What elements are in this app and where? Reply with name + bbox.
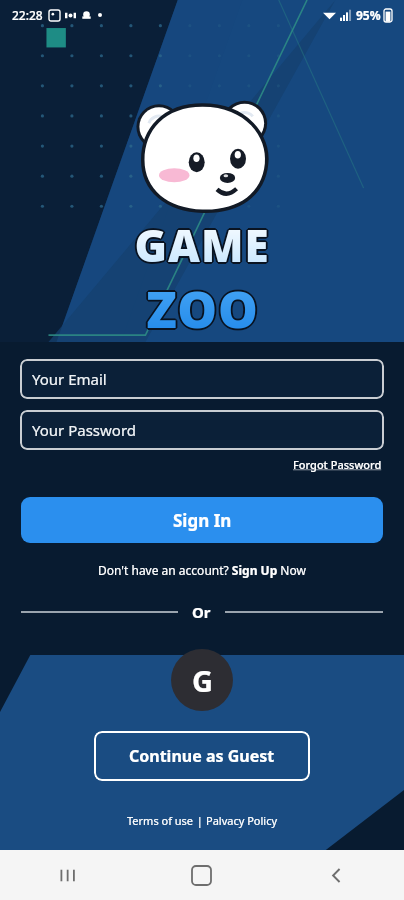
staticText: GAME: [133, 214, 269, 274]
staticText: ZOO: [147, 274, 260, 342]
staticText: GAME: [134, 213, 270, 273]
staticText: ZOO: [148, 275, 261, 343]
staticText: GAME: [135, 214, 271, 274]
staticText: ZOO: [147, 274, 260, 342]
staticText: GAME: [135, 216, 271, 276]
staticText: GAME: [133, 216, 269, 276]
staticText: ZOO: [145, 276, 258, 344]
staticText: Continue as Guest: [129, 745, 275, 767]
staticText: 22:28: [12, 7, 43, 23]
staticText: ZOO: [147, 276, 260, 344]
staticText: GAME: [135, 214, 271, 274]
staticText: ZOO: [145, 274, 258, 342]
staticText: GAME: [133, 214, 269, 274]
staticText: GAME: [134, 217, 270, 277]
staticText: ZOO: [146, 275, 259, 343]
button[interactable]: Sign In: [21, 497, 383, 543]
staticText: GAME: [134, 215, 270, 275]
staticText: ZOO: [147, 276, 260, 344]
staticText: GAME: [132, 215, 268, 275]
button[interactable]: Sign in with Google: [171, 649, 233, 711]
button[interactable]: Your Password: [20, 410, 384, 450]
staticText: Sign In: [173, 509, 232, 532]
button[interactable]: Forgot Password: [293, 457, 382, 472]
button[interactable]: Terms of use: [127, 813, 194, 828]
button[interactable]: Home: [134, 850, 269, 900]
staticText: |: [194, 813, 206, 828]
button[interactable]: Your Email: [20, 359, 384, 399]
staticText: Your Email: [32, 369, 107, 389]
staticText: Or: [192, 602, 211, 622]
staticText: G: [192, 661, 213, 700]
button[interactable]: Don't have an account? Sign Up Now: [0, 562, 404, 578]
button[interactable]: Continue as Guest: [94, 731, 310, 781]
staticText: ZOO: [146, 273, 259, 341]
staticText: Don't have an account? Sign Up Now: [98, 562, 306, 578]
staticText: GAME: [136, 215, 272, 275]
staticText: ZOO: [145, 274, 258, 342]
button[interactable]: Recent apps: [0, 850, 134, 900]
staticText: GAME: [135, 216, 271, 276]
staticText: GAME: [133, 216, 269, 276]
staticText: Your Password: [32, 420, 137, 440]
staticText: ZOO: [144, 275, 257, 343]
staticText: ZOO: [146, 277, 259, 345]
button[interactable]: Palvacy Policy: [206, 813, 278, 828]
button[interactable]: Back: [269, 850, 404, 900]
staticText: 95%: [356, 7, 381, 23]
staticText: ZOO: [145, 276, 258, 344]
